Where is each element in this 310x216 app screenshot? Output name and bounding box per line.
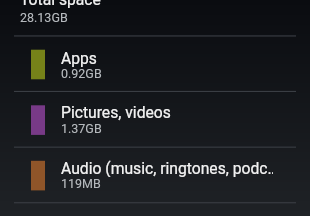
button[interactable] <box>0 35 310 90</box>
staticText: Apps <box>61 49 97 67</box>
staticText: Pictures, videos <box>61 103 171 121</box>
staticText: 0.92GB <box>61 66 102 81</box>
staticText: 28.13GB <box>20 10 68 25</box>
staticText: 119MB <box>61 176 101 191</box>
staticText: 1.37GB <box>61 121 102 136</box>
button[interactable] <box>0 91 310 146</box>
staticText: Total space <box>20 0 101 8</box>
staticText: Audio (music, ringtones, podc… <box>61 159 273 177</box>
button[interactable] <box>0 147 310 202</box>
